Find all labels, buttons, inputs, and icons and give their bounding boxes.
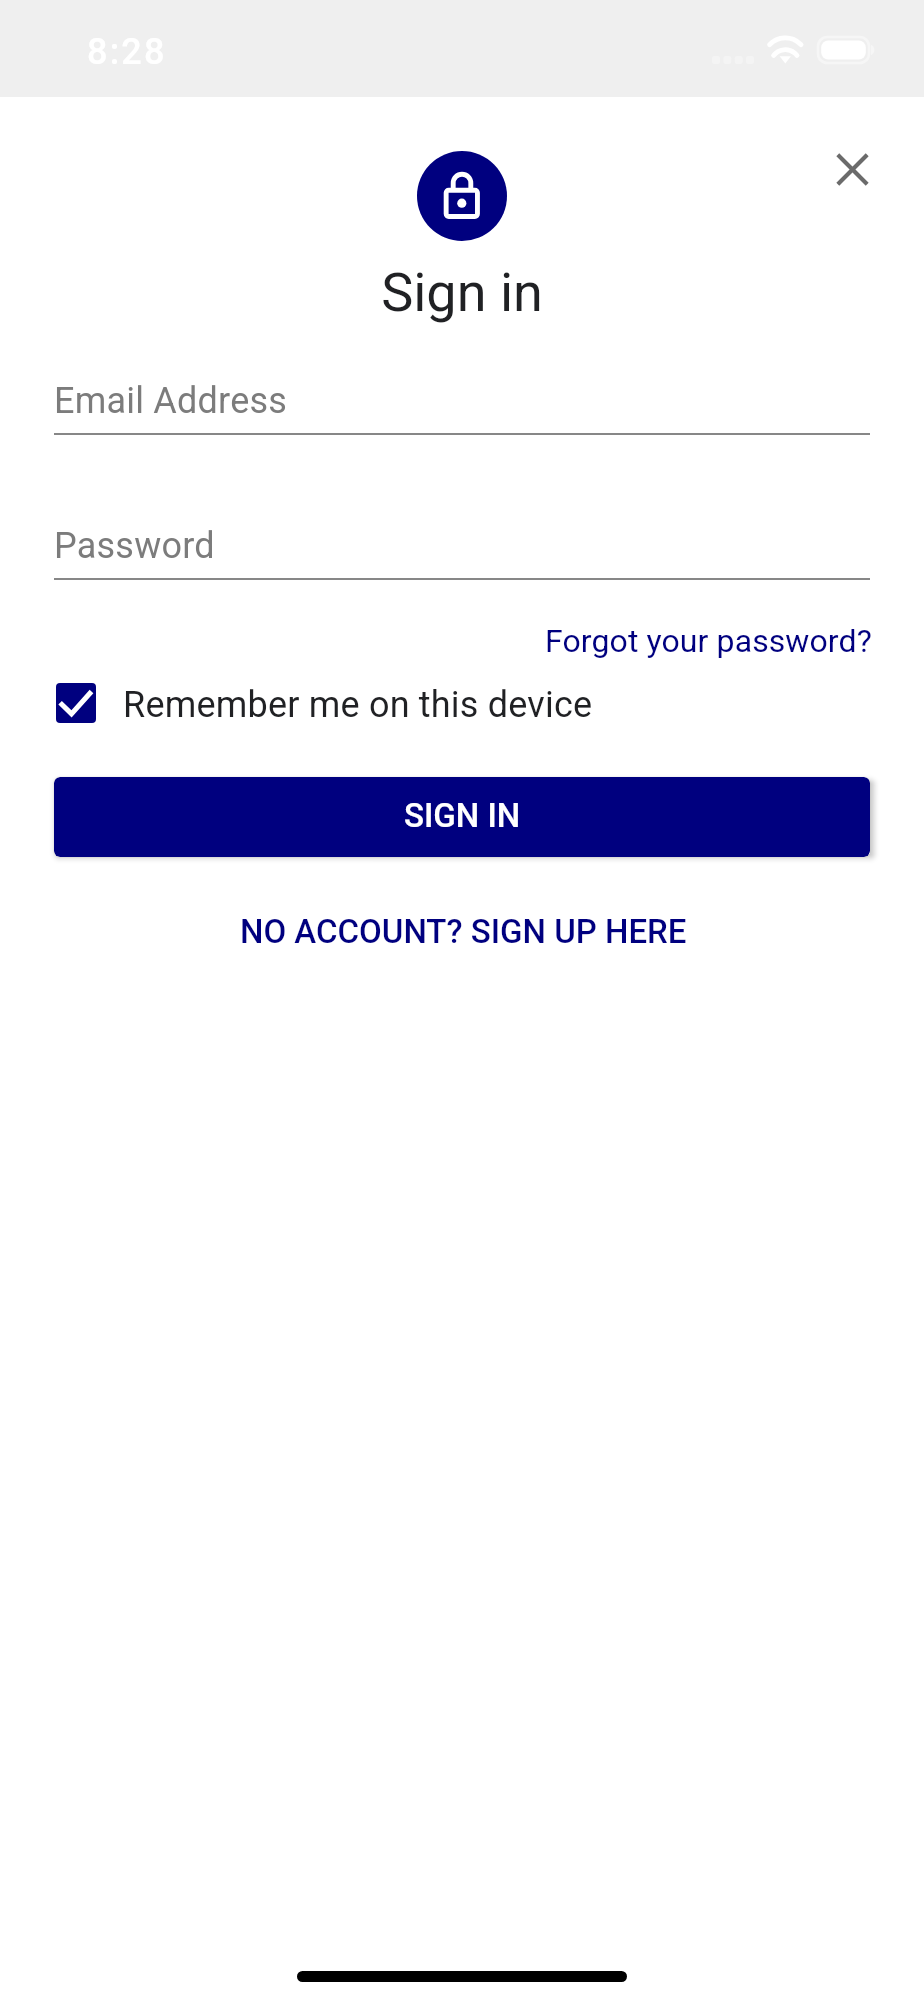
staticText: Sign in bbox=[0, 261, 924, 324]
staticText: Remember me on this device bbox=[123, 684, 593, 724]
button[interactable]: Forgot your password? bbox=[529, 608, 876, 674]
button[interactable]: Secure sign in bbox=[417, 151, 507, 241]
staticText: NO ACCOUNT? SIGN UP HERE bbox=[240, 912, 687, 951]
button[interactable]: Remember me on this device bbox=[56, 683, 593, 723]
button[interactable]: NO ACCOUNT? SIGN UP HERE bbox=[220, 892, 707, 971]
staticText: Forgot your password? bbox=[545, 622, 872, 660]
staticText: Password bbox=[54, 525, 215, 567]
staticText: Email Address bbox=[54, 380, 288, 422]
staticText: 8:28 bbox=[87, 31, 167, 73]
button[interactable]: SIGN IN bbox=[54, 777, 870, 857]
button[interactable]: Email Address bbox=[54, 371, 870, 435]
button[interactable]: Close bbox=[807, 124, 898, 215]
staticText: SIGN IN bbox=[404, 796, 521, 835]
button[interactable]: Password bbox=[54, 516, 870, 580]
